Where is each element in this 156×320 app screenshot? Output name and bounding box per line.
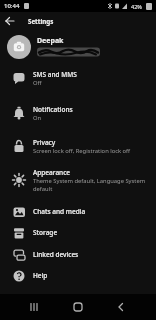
staticText: Deepak xyxy=(37,36,64,46)
button[interactable] xyxy=(0,294,52,320)
button[interactable]: Privacy xyxy=(0,132,156,160)
button[interactable] xyxy=(5,16,15,26)
staticText: Screen lock off, Registration lock off xyxy=(33,147,131,155)
button[interactable]: Storage xyxy=(0,222,156,243)
button[interactable]: Linked devices xyxy=(0,244,156,265)
staticText: Help xyxy=(33,271,48,280)
button[interactable]: Deepak xyxy=(0,31,156,63)
staticText: SMS and MMS xyxy=(33,70,77,79)
staticText: 10:44 xyxy=(4,2,20,10)
staticText: Chats and media xyxy=(33,207,86,216)
staticText: Settings xyxy=(28,17,54,25)
button[interactable]: Notifications xyxy=(0,99,156,127)
button[interactable]: Appearance xyxy=(0,163,156,197)
staticText: Off xyxy=(33,79,42,87)
button[interactable]: SMS and MMS xyxy=(0,64,156,92)
staticText: Theme System default, Language System xyxy=(33,177,146,185)
staticText: 42% xyxy=(131,3,142,10)
button[interactable] xyxy=(104,294,156,320)
staticText: Appearance xyxy=(33,168,71,177)
staticText: default xyxy=(33,185,53,193)
staticText: Linked devices xyxy=(33,250,79,259)
button[interactable] xyxy=(52,294,104,320)
button[interactable]: Chats and media xyxy=(0,201,156,222)
staticText: Privacy xyxy=(33,138,56,147)
staticText: On xyxy=(33,114,42,122)
button[interactable]: Help xyxy=(0,265,156,286)
staticText: Notifications xyxy=(33,105,73,114)
staticText: Storage xyxy=(33,228,58,237)
